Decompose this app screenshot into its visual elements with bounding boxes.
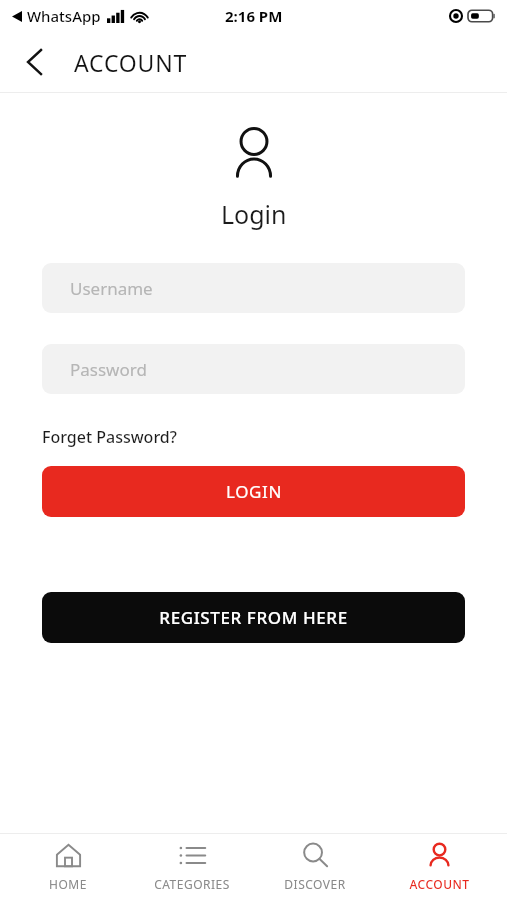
button[interactable]: LOGIN: [42, 466, 465, 517]
staticText: REGISTER FROM HERE: [159, 606, 348, 629]
staticText: ACCOUNT: [74, 47, 188, 78]
button[interactable]: REGISTER FROM HERE: [42, 592, 465, 643]
staticText: LOGIN: [226, 480, 282, 503]
staticText: HOME: [49, 876, 87, 892]
staticText: Login: [221, 197, 287, 231]
button[interactable]: Username: [42, 263, 465, 313]
button[interactable]: HOME: [13, 838, 123, 896]
button[interactable]: Forget Password?: [42, 426, 177, 448]
staticText: ACCOUNT: [409, 876, 470, 892]
button[interactable]: Password: [42, 344, 465, 394]
staticText: WhatsApp: [27, 6, 101, 26]
staticText: Forget Password?: [42, 426, 177, 448]
button[interactable]: DISCOVER: [260, 838, 370, 896]
button[interactable]: CATEGORIES: [137, 838, 247, 896]
staticText: Password: [70, 358, 147, 381]
button[interactable]: Back: [16, 44, 52, 80]
button[interactable]: ACCOUNT: [384, 838, 494, 896]
staticText: Username: [70, 277, 153, 300]
staticText: 2:16 PM: [225, 6, 283, 26]
staticText: DISCOVER: [284, 876, 346, 892]
staticText: CATEGORIES: [154, 876, 230, 892]
